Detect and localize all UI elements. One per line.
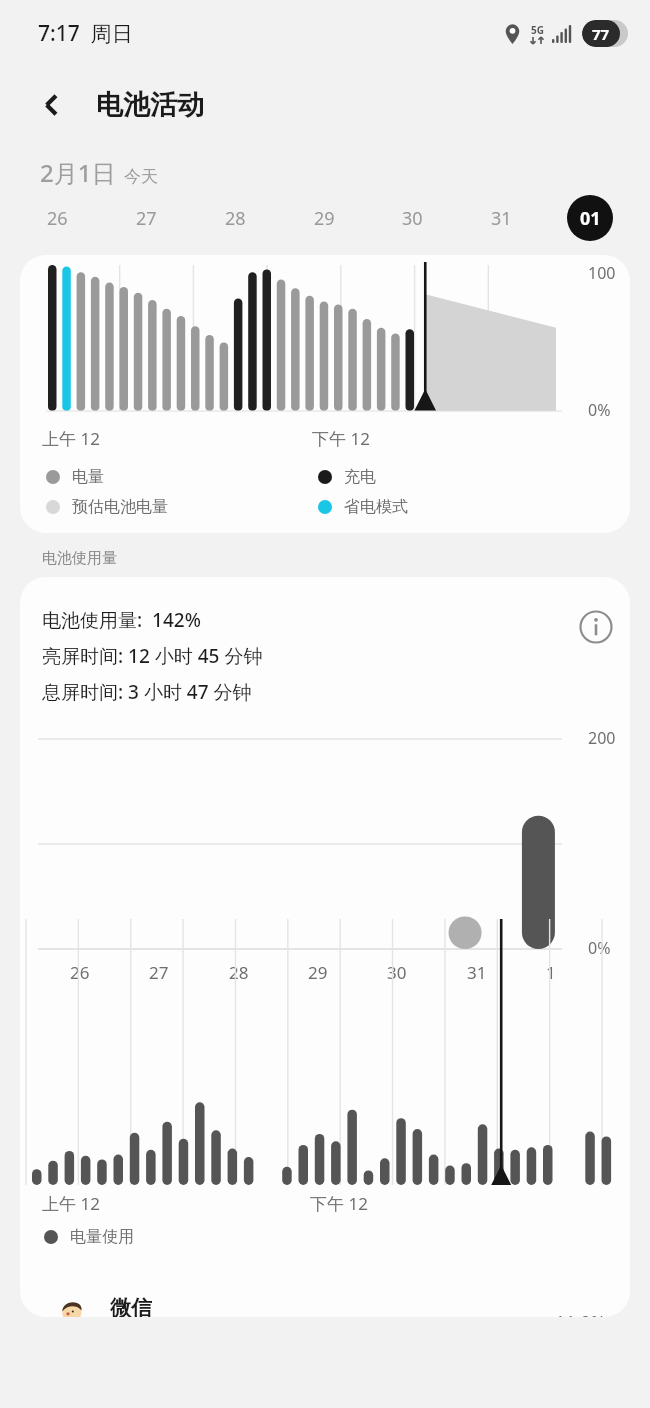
button[interactable]: 28 (212, 195, 258, 241)
staticText: 电量 (72, 467, 104, 487)
staticText: 30 (387, 961, 407, 984)
button[interactable]: 信息 (568, 599, 624, 655)
staticText: 2月1日 (40, 156, 116, 189)
staticText: 29 (314, 206, 335, 231)
staticText: 息屏时间: 3 小时 47 分钟 (42, 679, 252, 705)
staticText: 7:17 周日 (38, 19, 133, 48)
staticText: 5G (531, 23, 544, 37)
button[interactable]: 微信 (20, 1277, 630, 1317)
button[interactable]: 29 (301, 195, 347, 241)
staticText: 28 (225, 206, 246, 231)
staticText: 省电模式 (344, 497, 408, 517)
button[interactable]: 27 (123, 195, 169, 241)
staticText: 今天 (124, 166, 158, 187)
staticText: 31 (491, 206, 512, 231)
button[interactable]: 01 (567, 195, 613, 241)
staticText: 亮屏时间: 12 小时 45 分钟 (42, 643, 263, 669)
staticText: 27 (149, 961, 169, 984)
staticText: 微信 (110, 1295, 152, 1317)
staticText: 0% (588, 399, 611, 421)
staticText: 200 (588, 727, 616, 749)
staticText: 29 (308, 961, 328, 984)
button[interactable]: 100 (20, 255, 630, 533)
staticText: 电池活动 (96, 88, 204, 122)
button[interactable]: 返回 (30, 83, 74, 127)
staticText: 77 (592, 24, 610, 44)
staticText: 28 (229, 961, 249, 984)
staticText: 30 (402, 206, 423, 231)
button[interactable]: 30 (389, 195, 435, 241)
button[interactable]: 26 (34, 195, 80, 241)
staticText: 电池使用量: 142% (42, 607, 201, 633)
staticText: 上午 12 (42, 1192, 100, 1215)
staticText: 0% (588, 937, 611, 959)
staticText: 预估电池电量 (72, 497, 168, 517)
staticText: 上午 12 (42, 427, 100, 450)
staticText: 26 (47, 206, 68, 231)
staticText: 充电 (344, 467, 376, 487)
staticText: 01 (580, 206, 601, 231)
staticText: 下午 12 (312, 427, 370, 450)
staticText: 27 (136, 206, 157, 231)
staticText: 100 (588, 262, 616, 284)
staticText: 电量使用 (70, 1227, 134, 1247)
staticText: 下午 12 (310, 1192, 368, 1215)
button[interactable]: 31 (478, 195, 524, 241)
staticText: 电池使用量 (42, 549, 117, 568)
staticText: 1 (546, 961, 556, 984)
staticText: 11.9% (555, 1310, 606, 1317)
staticText: 31 (467, 961, 487, 984)
staticText: 26 (70, 961, 90, 984)
